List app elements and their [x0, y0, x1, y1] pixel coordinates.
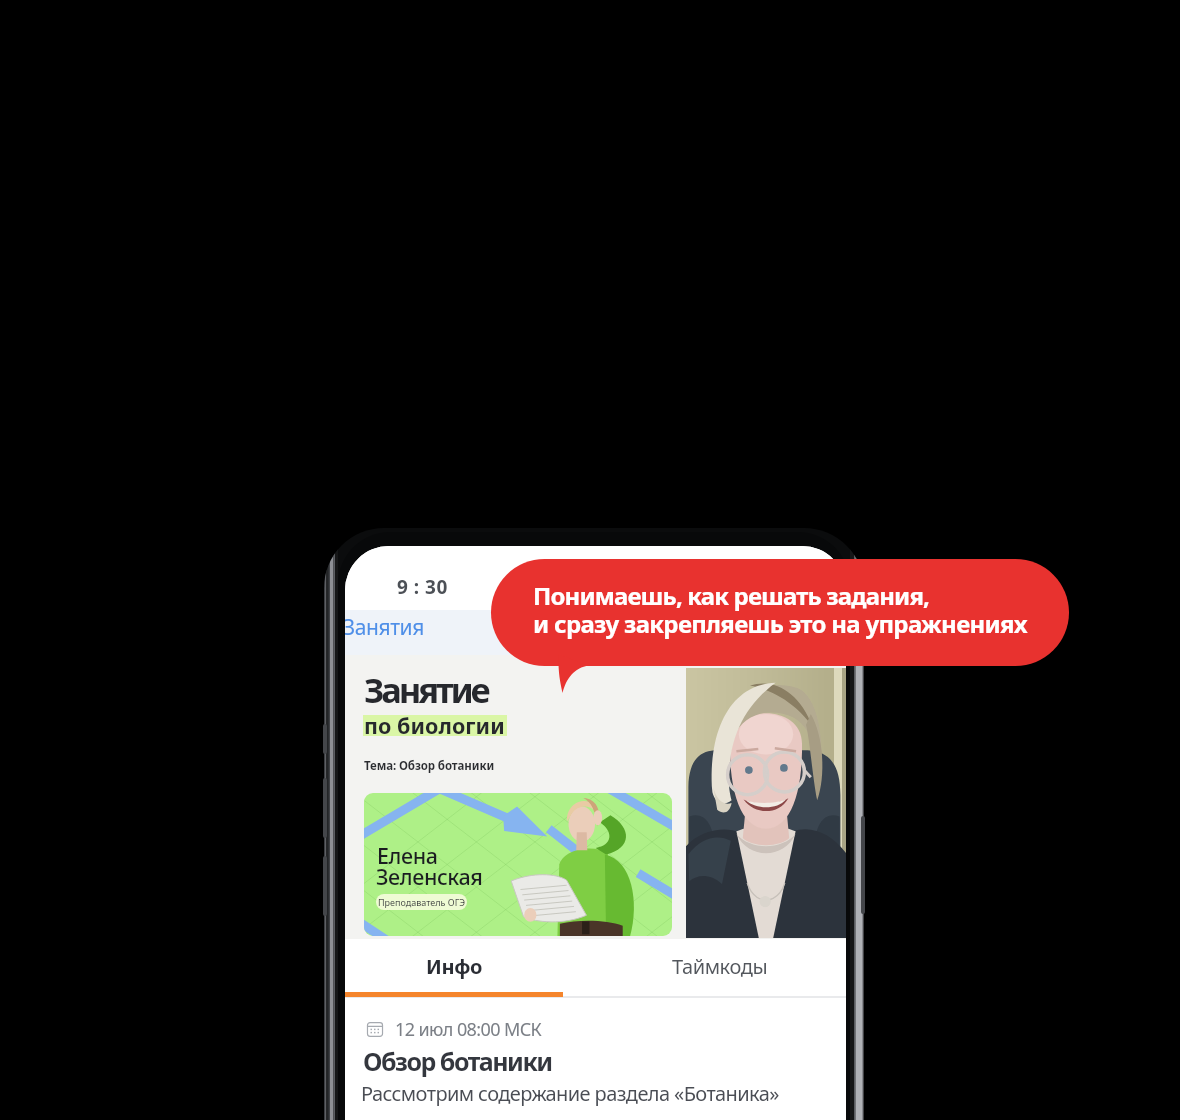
staticText: Преподаватель ОГЭ	[378, 896, 466, 908]
staticText: Тема: Обзор ботаники	[364, 758, 495, 774]
staticText: Таймкоды	[672, 953, 768, 980]
button[interactable]: Таймкоды	[563, 939, 846, 998]
staticText: Занятие	[364, 666, 488, 713]
staticText: 12 июл 08:00 МСК	[395, 1017, 542, 1042]
staticText: по биологии	[364, 711, 505, 740]
button[interactable]: Елена	[364, 793, 672, 936]
button[interactable]: Инфо	[345, 939, 563, 998]
other: Date	[367, 1021, 383, 1037]
staticText: 9 : 30	[397, 574, 448, 600]
staticText: Понимаешь, как решать задания,	[533, 579, 930, 612]
staticText: Елена	[377, 841, 438, 870]
staticText: Зеленская	[376, 862, 483, 891]
staticText: Инфо	[426, 953, 482, 980]
staticText: Занятия	[345, 613, 424, 642]
staticText: и сразу закрепляешь это на упражнениях	[533, 607, 1027, 640]
button[interactable]: Занятия	[345, 610, 846, 655]
staticText: Обзор ботаники	[363, 1044, 552, 1078]
button[interactable]: Date	[345, 998, 846, 1120]
staticText: Рассмотрим содержание раздела «Ботаника»	[361, 1080, 779, 1107]
